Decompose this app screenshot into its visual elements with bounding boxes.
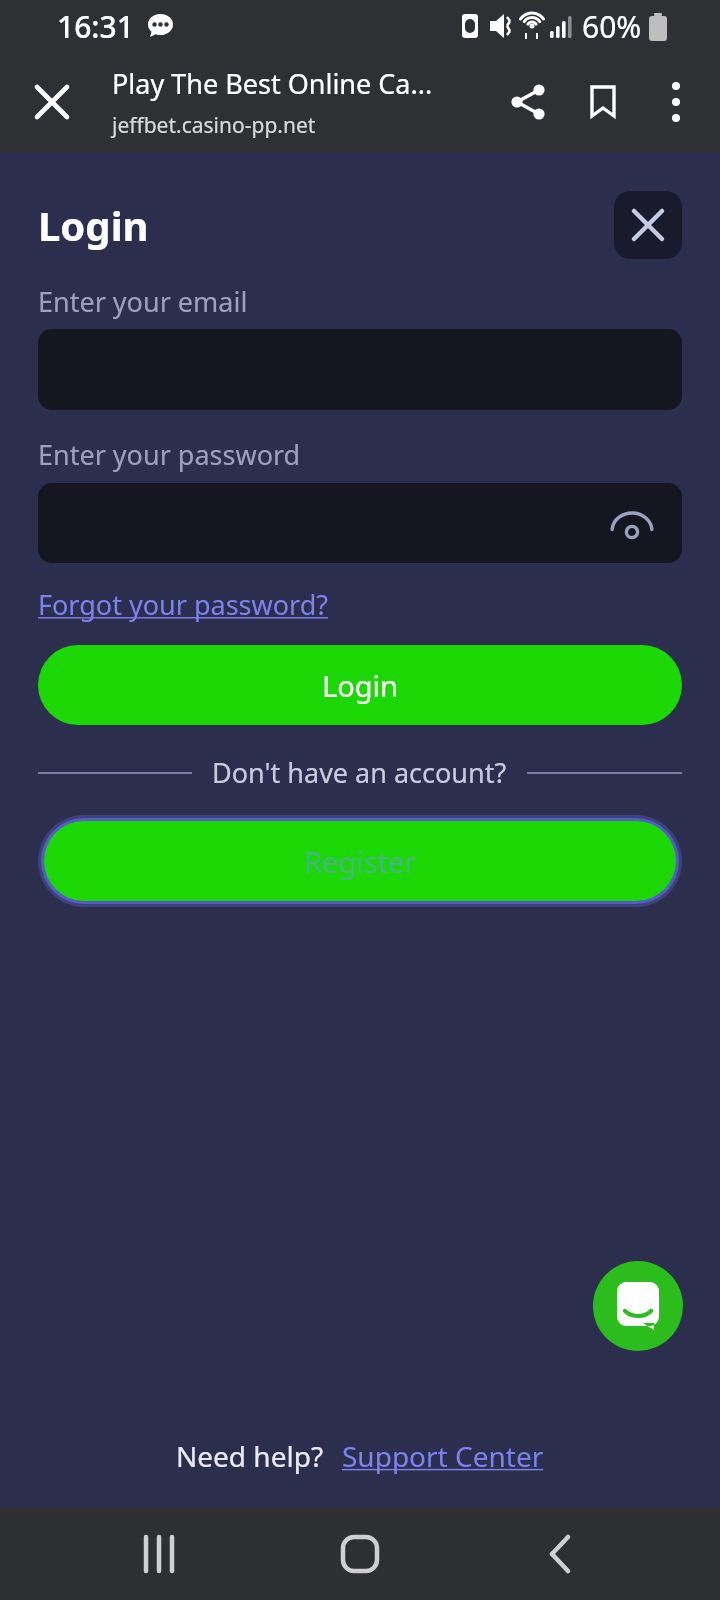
staticText: Don't have an account? [212,754,507,791]
staticText: Login [322,666,398,705]
button[interactable]: Support Center [342,1437,544,1475]
button[interactable] [614,191,682,259]
button[interactable] [520,1514,600,1594]
button[interactable] [496,70,560,134]
button[interactable] [572,70,636,134]
staticText: 16:31 [57,6,134,47]
button[interactable] [320,1514,400,1594]
staticText: Enter your password [38,436,301,473]
staticText: Enter your email [38,283,248,320]
button[interactable] [16,66,88,138]
button[interactable] [120,1514,200,1594]
button[interactable]: Login [38,645,682,725]
button[interactable] [38,483,682,563]
button[interactable]: Forgot your password? [38,586,329,623]
staticText: Register [304,842,417,881]
button[interactable] [646,72,706,132]
button[interactable] [593,1261,683,1351]
staticText: Login [38,198,149,252]
staticText: Play The Best Online Ca... [112,65,433,102]
button[interactable]: Register [44,821,676,901]
staticText: Need help? [176,1437,324,1475]
staticText: jeffbet.casino-pp.net [112,111,316,140]
staticText: 60% [582,6,642,47]
